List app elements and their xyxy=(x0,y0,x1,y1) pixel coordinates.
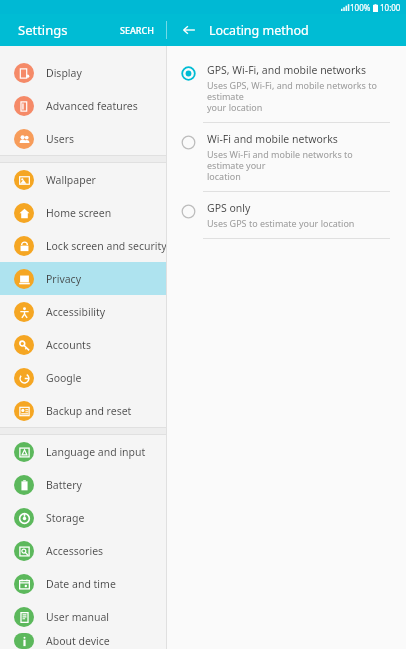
button[interactable]: Users xyxy=(0,122,167,155)
button[interactable]: Accessories xyxy=(0,534,167,567)
staticText: Accounts xyxy=(46,338,91,352)
staticText: Storage xyxy=(46,511,85,525)
staticText: Home screen xyxy=(46,206,112,220)
staticText: Language and input xyxy=(46,445,146,459)
button[interactable]: Accounts xyxy=(0,328,167,361)
button[interactable]: Wi-Fi and mobile networks xyxy=(167,123,406,191)
staticText: GPS only xyxy=(207,201,251,215)
button[interactable]: Settings xyxy=(18,21,68,39)
button[interactable]: About device xyxy=(0,633,167,649)
staticText: Date and time xyxy=(46,577,116,591)
button[interactable]: Accessibility xyxy=(0,295,167,328)
staticText: GPS, Wi-Fi, and mobile networks xyxy=(207,63,366,77)
staticText: 10:00 xyxy=(380,2,401,13)
button[interactable]: Lock screen and security xyxy=(0,229,167,262)
staticText: User manual xyxy=(46,610,109,624)
button[interactable]: Battery xyxy=(0,468,167,501)
staticText: Backup and reset xyxy=(46,404,132,418)
staticText: Wi-Fi and mobile networks xyxy=(207,132,338,146)
button[interactable]: GPS, Wi-Fi, and mobile networks xyxy=(167,54,406,122)
staticText: SEARCH xyxy=(120,24,154,36)
staticText: Display xyxy=(46,66,82,80)
button[interactable]: Home screen xyxy=(0,196,167,229)
staticText: 100% xyxy=(350,2,371,13)
staticText: Accessories xyxy=(46,544,104,558)
staticText: Advanced features xyxy=(46,99,138,113)
button[interactable]: Privacy xyxy=(0,262,167,295)
button[interactable]: User manual xyxy=(0,600,167,633)
button[interactable]: Date and time xyxy=(0,567,167,600)
staticText: Uses GPS, Wi-Fi, and mobile networks to … xyxy=(207,79,390,113)
staticText: About device xyxy=(46,634,110,648)
staticText: Uses GPS to estimate your location xyxy=(207,217,355,229)
button[interactable]: Advanced features xyxy=(0,89,167,122)
staticText: Locating method xyxy=(209,22,309,39)
staticText: Settings xyxy=(18,21,68,39)
button[interactable]: Google xyxy=(0,361,167,394)
button[interactable]: GPS only xyxy=(167,192,406,238)
staticText: Lock screen and security xyxy=(46,239,167,253)
button[interactable]: Display xyxy=(0,56,167,89)
staticText: Google xyxy=(46,371,82,385)
staticText: Wallpaper xyxy=(46,173,96,187)
button[interactable]: Wallpaper xyxy=(0,163,167,196)
button[interactable]: Storage xyxy=(0,501,167,534)
staticText: Uses Wi-Fi and mobile networks to estima… xyxy=(207,148,390,182)
staticText: Privacy xyxy=(46,272,82,286)
staticText: Accessibility xyxy=(46,305,106,319)
button[interactable]: SEARCH xyxy=(114,18,160,42)
staticText: Users xyxy=(46,132,74,146)
staticText: Battery xyxy=(46,478,82,492)
button[interactable]: Language and input xyxy=(0,435,167,468)
button[interactable]: Back xyxy=(175,16,203,44)
button[interactable]: Backup and reset xyxy=(0,394,167,427)
